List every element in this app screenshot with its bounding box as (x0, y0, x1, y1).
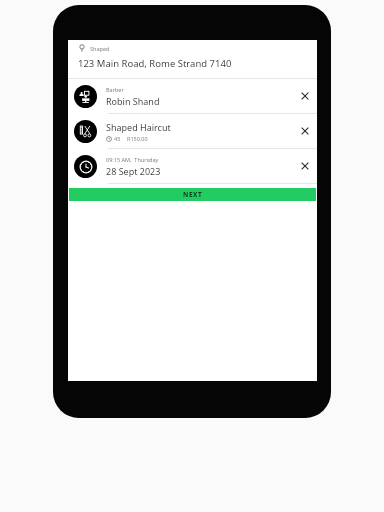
staticText: Barber (106, 86, 124, 93)
button[interactable]: Barber (68, 79, 317, 113)
staticText: Robin Shand (106, 95, 160, 107)
staticText: R150.00 (127, 135, 148, 142)
staticText: 123 Main Road, Rome Strand 7140 (78, 57, 232, 70)
staticText: 09:15 AM, Thursday (106, 156, 159, 163)
staticText: 28 Sept 2023 (106, 165, 161, 177)
staticText: NEXT (183, 190, 203, 199)
button[interactable]: Remove Service Shaped Haircut (297, 123, 313, 139)
staticText: 45 (114, 135, 121, 142)
staticText: Shaped Haircut (106, 121, 171, 133)
button[interactable]: NEXT (69, 188, 316, 201)
button[interactable]: Remove Date 28 Sept 2023 (297, 158, 313, 174)
button[interactable]: Shaped Haircut (68, 114, 317, 148)
staticText: Shaped (90, 45, 110, 52)
button[interactable]: Remove Barber Robin Shand (297, 88, 313, 104)
button[interactable]: 09:15 AM, Thursday (68, 149, 317, 183)
